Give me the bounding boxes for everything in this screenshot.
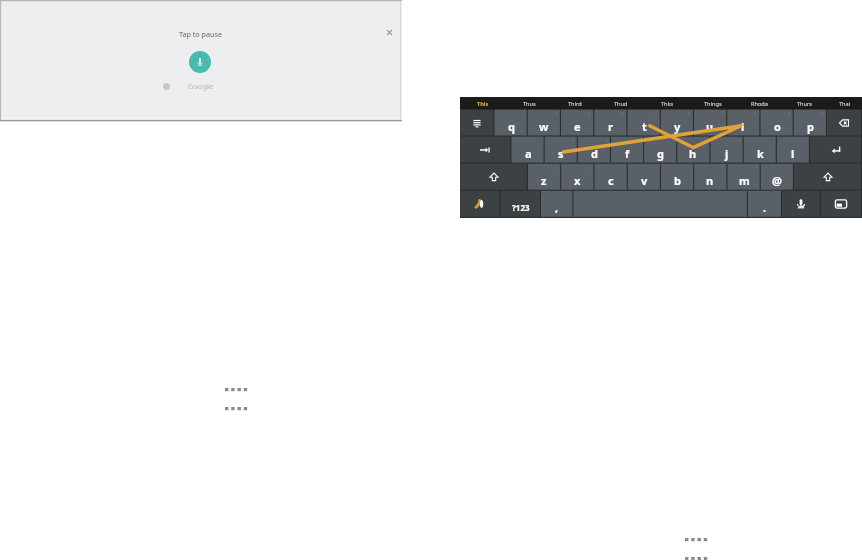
staticText: x	[574, 173, 581, 188]
button[interactable]: Thud	[598, 97, 644, 110]
button[interactable]: z	[528, 164, 560, 190]
button[interactable]: q	[495, 110, 527, 136]
button[interactable]: Hide keyboard	[821, 191, 861, 217]
button[interactable]: .	[748, 191, 781, 217]
staticText: 0	[821, 111, 824, 117]
staticText: Thks	[661, 100, 674, 108]
button[interactable]: j	[711, 137, 743, 163]
staticText: 5	[588, 165, 591, 171]
staticText: 1	[522, 111, 525, 117]
staticText: b	[674, 173, 681, 188]
button[interactable]: e	[561, 110, 593, 136]
staticText: 8	[754, 111, 757, 117]
staticText: Things	[704, 100, 722, 108]
staticText: @	[772, 173, 782, 188]
staticText: w	[539, 119, 549, 134]
staticText: m	[739, 173, 750, 188]
staticText: 7	[721, 165, 724, 171]
button[interactable]: @	[761, 164, 793, 190]
button[interactable]: Third	[552, 97, 598, 110]
staticText: 9	[788, 111, 791, 117]
staticText: p	[807, 119, 814, 134]
staticText: y	[674, 119, 681, 134]
button[interactable]: d	[578, 137, 610, 163]
button[interactable]: b	[661, 164, 693, 190]
button[interactable]: l	[777, 137, 809, 163]
staticText: Thai	[839, 100, 851, 108]
staticText: t	[642, 119, 647, 134]
button[interactable]: Rhoda	[736, 97, 782, 110]
staticText: 8	[755, 165, 758, 171]
button[interactable]: u	[694, 110, 726, 136]
button[interactable]: y	[661, 110, 693, 136]
staticText: 3	[588, 111, 591, 117]
button[interactable]: f	[611, 137, 643, 163]
staticText: Rhoda	[751, 100, 768, 108]
staticText: v	[641, 173, 648, 188]
button[interactable]: This	[460, 97, 506, 110]
staticText: a	[525, 146, 532, 161]
staticText: z	[541, 173, 547, 188]
button[interactable]: Thurs	[782, 97, 828, 110]
button[interactable]: Voice input	[782, 191, 820, 217]
button[interactable]: i	[727, 110, 759, 136]
staticText: o	[774, 119, 781, 134]
staticText: s	[558, 146, 564, 161]
staticText: Thurs	[797, 100, 813, 108]
button[interactable]: ?123	[501, 191, 540, 217]
staticText: 4	[555, 165, 558, 171]
button[interactable]: Settings	[460, 110, 493, 136]
button[interactable]: ,	[541, 191, 572, 217]
button[interactable]: Backspace	[827, 110, 861, 136]
button[interactable]: Tab	[460, 137, 510, 163]
button[interactable]: Thus	[506, 97, 552, 110]
button[interactable]: Shift	[794, 164, 861, 190]
button[interactable]: r	[594, 110, 626, 136]
staticText: 5	[605, 138, 608, 144]
staticText: .	[763, 200, 767, 215]
staticText: r	[608, 119, 613, 134]
staticText: This	[477, 100, 489, 108]
staticText: Google	[0, 81, 401, 91]
staticText: °	[536, 192, 538, 198]
button[interactable]: Things	[690, 97, 736, 110]
button[interactable]: m	[728, 164, 760, 190]
button[interactable]: g	[644, 137, 676, 163]
staticText: Thus	[523, 100, 536, 108]
staticText: 6	[655, 165, 658, 171]
staticText: 5	[655, 111, 658, 117]
staticText: i	[741, 119, 745, 134]
button[interactable]: x	[561, 164, 593, 190]
button[interactable]: Thai	[828, 97, 862, 110]
staticText: l	[791, 146, 795, 161]
staticText: 4	[572, 138, 575, 144]
button[interactable]: Close	[382, 25, 397, 40]
staticText: h	[689, 146, 697, 161]
button[interactable]: Gesture typing	[460, 191, 499, 217]
staticText: Thud	[614, 100, 628, 108]
button[interactable]: h	[677, 137, 709, 163]
staticText: q	[508, 119, 515, 134]
button[interactable]: Enter	[810, 137, 861, 163]
button[interactable]: k	[744, 137, 776, 163]
button[interactable]: s	[545, 137, 577, 163]
staticText: Third	[568, 100, 582, 108]
button[interactable]: Thks	[644, 97, 690, 110]
button[interactable]: v	[628, 164, 660, 190]
button[interactable]: p	[794, 110, 826, 136]
button[interactable]: o	[761, 110, 793, 136]
button[interactable]: t	[628, 110, 660, 136]
button[interactable]: n	[694, 164, 726, 190]
staticText: j	[725, 146, 729, 161]
button[interactable]: Pause voice input	[189, 51, 211, 73]
button[interactable]: w	[528, 110, 560, 136]
staticText: ?123	[512, 202, 530, 213]
staticText: 7	[721, 111, 724, 117]
staticText: 4	[621, 111, 624, 117]
button[interactable]: c	[595, 164, 627, 190]
button[interactable]: a	[512, 137, 544, 163]
staticText: 6	[688, 111, 691, 117]
button[interactable]: Shift	[460, 164, 527, 190]
staticText: d	[591, 146, 598, 161]
